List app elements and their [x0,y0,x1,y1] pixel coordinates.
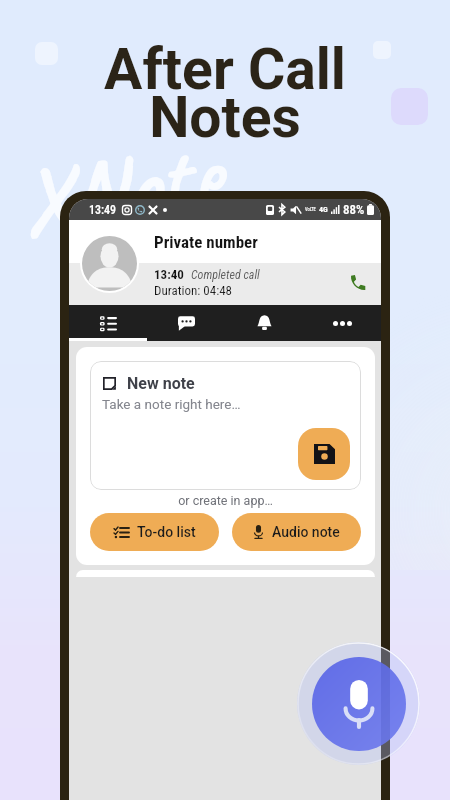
button[interactable]: Messages [147,305,225,341]
staticText: New note [127,374,195,393]
staticText: Notes [149,84,301,151]
staticText: Duration: 04:48 [154,283,233,298]
button[interactable]: New note [90,361,361,490]
staticText: or create in app… [90,493,361,508]
staticText: 13:49 [89,203,117,217]
button[interactable]: More options [303,305,381,341]
staticText: Audio note [272,524,340,540]
button[interactable]: Notifications [225,305,303,341]
button[interactable]: Notes list [69,305,147,341]
button[interactable]: Record audio note [297,642,420,765]
staticText: Take a note right here… [102,396,241,412]
staticText: 13:40 [154,267,184,282]
button[interactable]: To-do list [90,513,219,551]
staticText: Private number [154,232,258,252]
staticText: 88% [343,202,365,217]
button[interactable]: Save note [298,428,350,480]
staticText: VoLTE [305,207,316,212]
staticText: After Call [104,36,346,103]
button[interactable]: Call back [345,269,371,295]
staticText: To-do list [137,524,196,540]
staticText: XNote [12,113,230,263]
staticText: 4G [319,205,328,214]
button[interactable]: Audio note [232,513,361,551]
staticText: Completed call [191,268,260,282]
